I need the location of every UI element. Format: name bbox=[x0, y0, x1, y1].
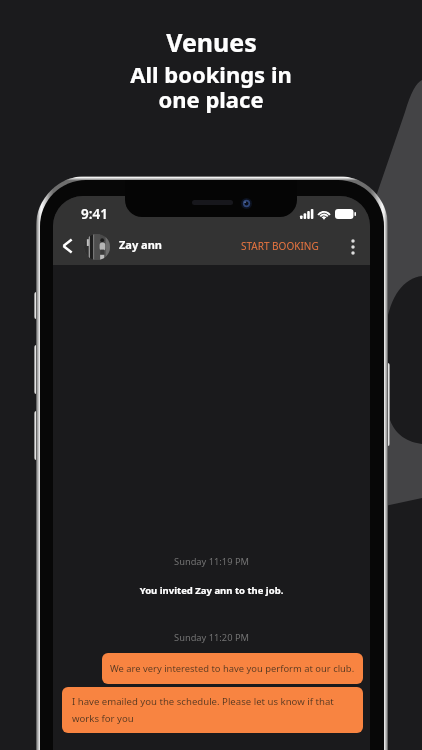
staticText: You invited Zay ann to the job. bbox=[53, 584, 370, 597]
staticText: Sunday 11:20 PM bbox=[53, 631, 370, 644]
staticText: Sunday 11:19 PM bbox=[53, 555, 370, 568]
button[interactable]: We are very interested to have you perfo… bbox=[102, 653, 363, 684]
staticText: Venues bbox=[166, 25, 257, 59]
button[interactable]: I have emailed you the schedule. Please … bbox=[62, 687, 363, 733]
staticText: All bookings in one place bbox=[130, 59, 292, 115]
button[interactable]: Back bbox=[53, 232, 81, 260]
button[interactable]: START BOOKING bbox=[236, 233, 324, 259]
button[interactable]: More options bbox=[341, 235, 365, 259]
staticText: Zay ann bbox=[119, 237, 162, 252]
staticText: I have emailed you the schedule. Please … bbox=[72, 695, 353, 725]
staticText: We are very interested to have you perfo… bbox=[110, 662, 355, 675]
staticText: START BOOKING bbox=[241, 239, 319, 253]
staticText: 9:41 bbox=[81, 205, 108, 223]
